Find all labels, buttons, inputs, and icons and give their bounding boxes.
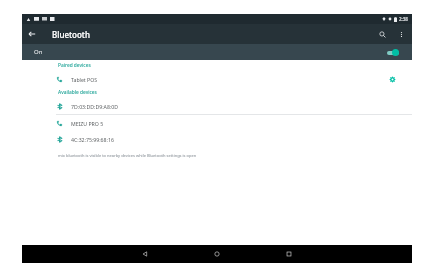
button[interactable]: Device settings	[386, 73, 398, 85]
button[interactable]: More options	[392, 25, 410, 43]
staticText: mix bluetooth is visible to nearby devic…	[58, 153, 197, 158]
staticText: Available devices	[58, 89, 97, 96]
button[interactable]: Home	[200, 245, 234, 263]
staticText: Paired devices	[58, 62, 91, 69]
staticText: 7D:03:DD:D9:A8:0D	[71, 103, 119, 110]
staticText: Bluetooth	[52, 29, 90, 40]
staticText: MEIZU PRO 5	[71, 120, 104, 127]
staticText: 2:38	[399, 16, 408, 22]
button[interactable]: 4C:32:75:99:68:16	[22, 131, 412, 147]
staticText: Tablet POS	[71, 76, 98, 83]
button[interactable]: Tablet POS	[22, 71, 412, 87]
button[interactable]: Back	[22, 24, 42, 44]
button[interactable]: Recent apps	[272, 245, 306, 263]
staticText: 4C:32:75:99:68:16	[71, 136, 114, 143]
button[interactable]: MEIZU PRO 5	[22, 115, 412, 131]
staticText: On	[34, 48, 43, 56]
button[interactable]: On	[22, 44, 412, 60]
button[interactable]: Back	[128, 245, 162, 263]
button[interactable]: 7D:03:DD:D9:A8:0D	[22, 98, 412, 114]
button[interactable]: Search	[372, 24, 392, 44]
